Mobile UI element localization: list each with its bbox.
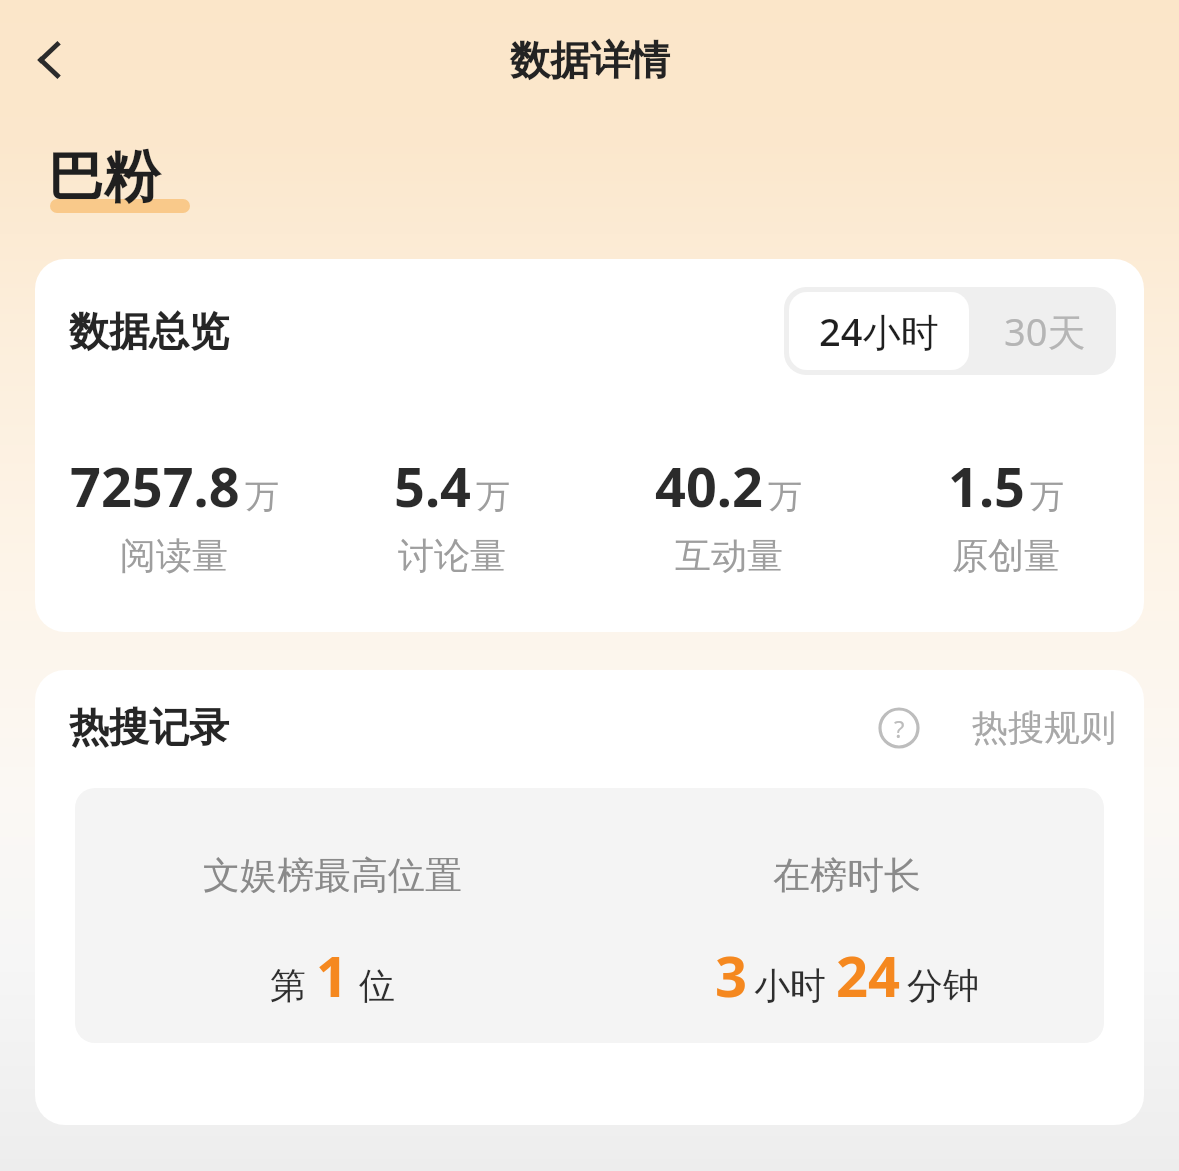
staticText: 5.4: [394, 449, 471, 523]
staticText: 分钟: [907, 963, 979, 1008]
staticText: 互动量: [675, 533, 783, 578]
staticText: 万: [476, 475, 510, 518]
staticText: 万: [245, 475, 279, 518]
staticText: 24小时: [819, 305, 939, 357]
staticText: 1.5: [948, 449, 1025, 523]
staticText: 文娱榜最高位置: [203, 852, 462, 899]
staticText: 热搜规则: [972, 705, 1116, 750]
staticText: 7257.8: [70, 449, 240, 523]
staticText: 30天: [1004, 305, 1086, 357]
staticText: 原创量: [952, 533, 1060, 578]
staticText: ?: [894, 712, 905, 745]
staticText: 巴粉: [48, 142, 160, 213]
button[interactable]: 7257.8: [35, 449, 313, 578]
staticText: 万: [1030, 475, 1064, 518]
button[interactable]: Back: [10, 20, 90, 100]
staticText: 数据详情: [510, 35, 670, 85]
button[interactable]: 40.2: [590, 449, 867, 578]
staticText: 在榜时长: [773, 852, 921, 899]
button[interactable]: ?: [878, 705, 1116, 750]
staticText: 40.2: [655, 449, 763, 523]
staticText: 3: [715, 937, 748, 1013]
button[interactable]: 24小时: [789, 292, 969, 370]
button[interactable]: 5.4: [313, 449, 590, 578]
button[interactable]: 1.5: [867, 449, 1144, 578]
button[interactable]: 30天: [974, 287, 1116, 375]
staticText: 1: [316, 937, 349, 1013]
staticText: 数据总览: [69, 306, 229, 356]
staticText: 热搜记录: [69, 702, 229, 752]
staticText: 阅读量: [120, 533, 228, 578]
staticText: 讨论量: [398, 533, 506, 578]
staticText: 小时: [754, 963, 826, 1008]
staticText: 第: [270, 963, 306, 1008]
staticText: 24: [836, 937, 901, 1013]
staticText: 位: [359, 963, 395, 1008]
staticText: 万: [768, 475, 802, 518]
